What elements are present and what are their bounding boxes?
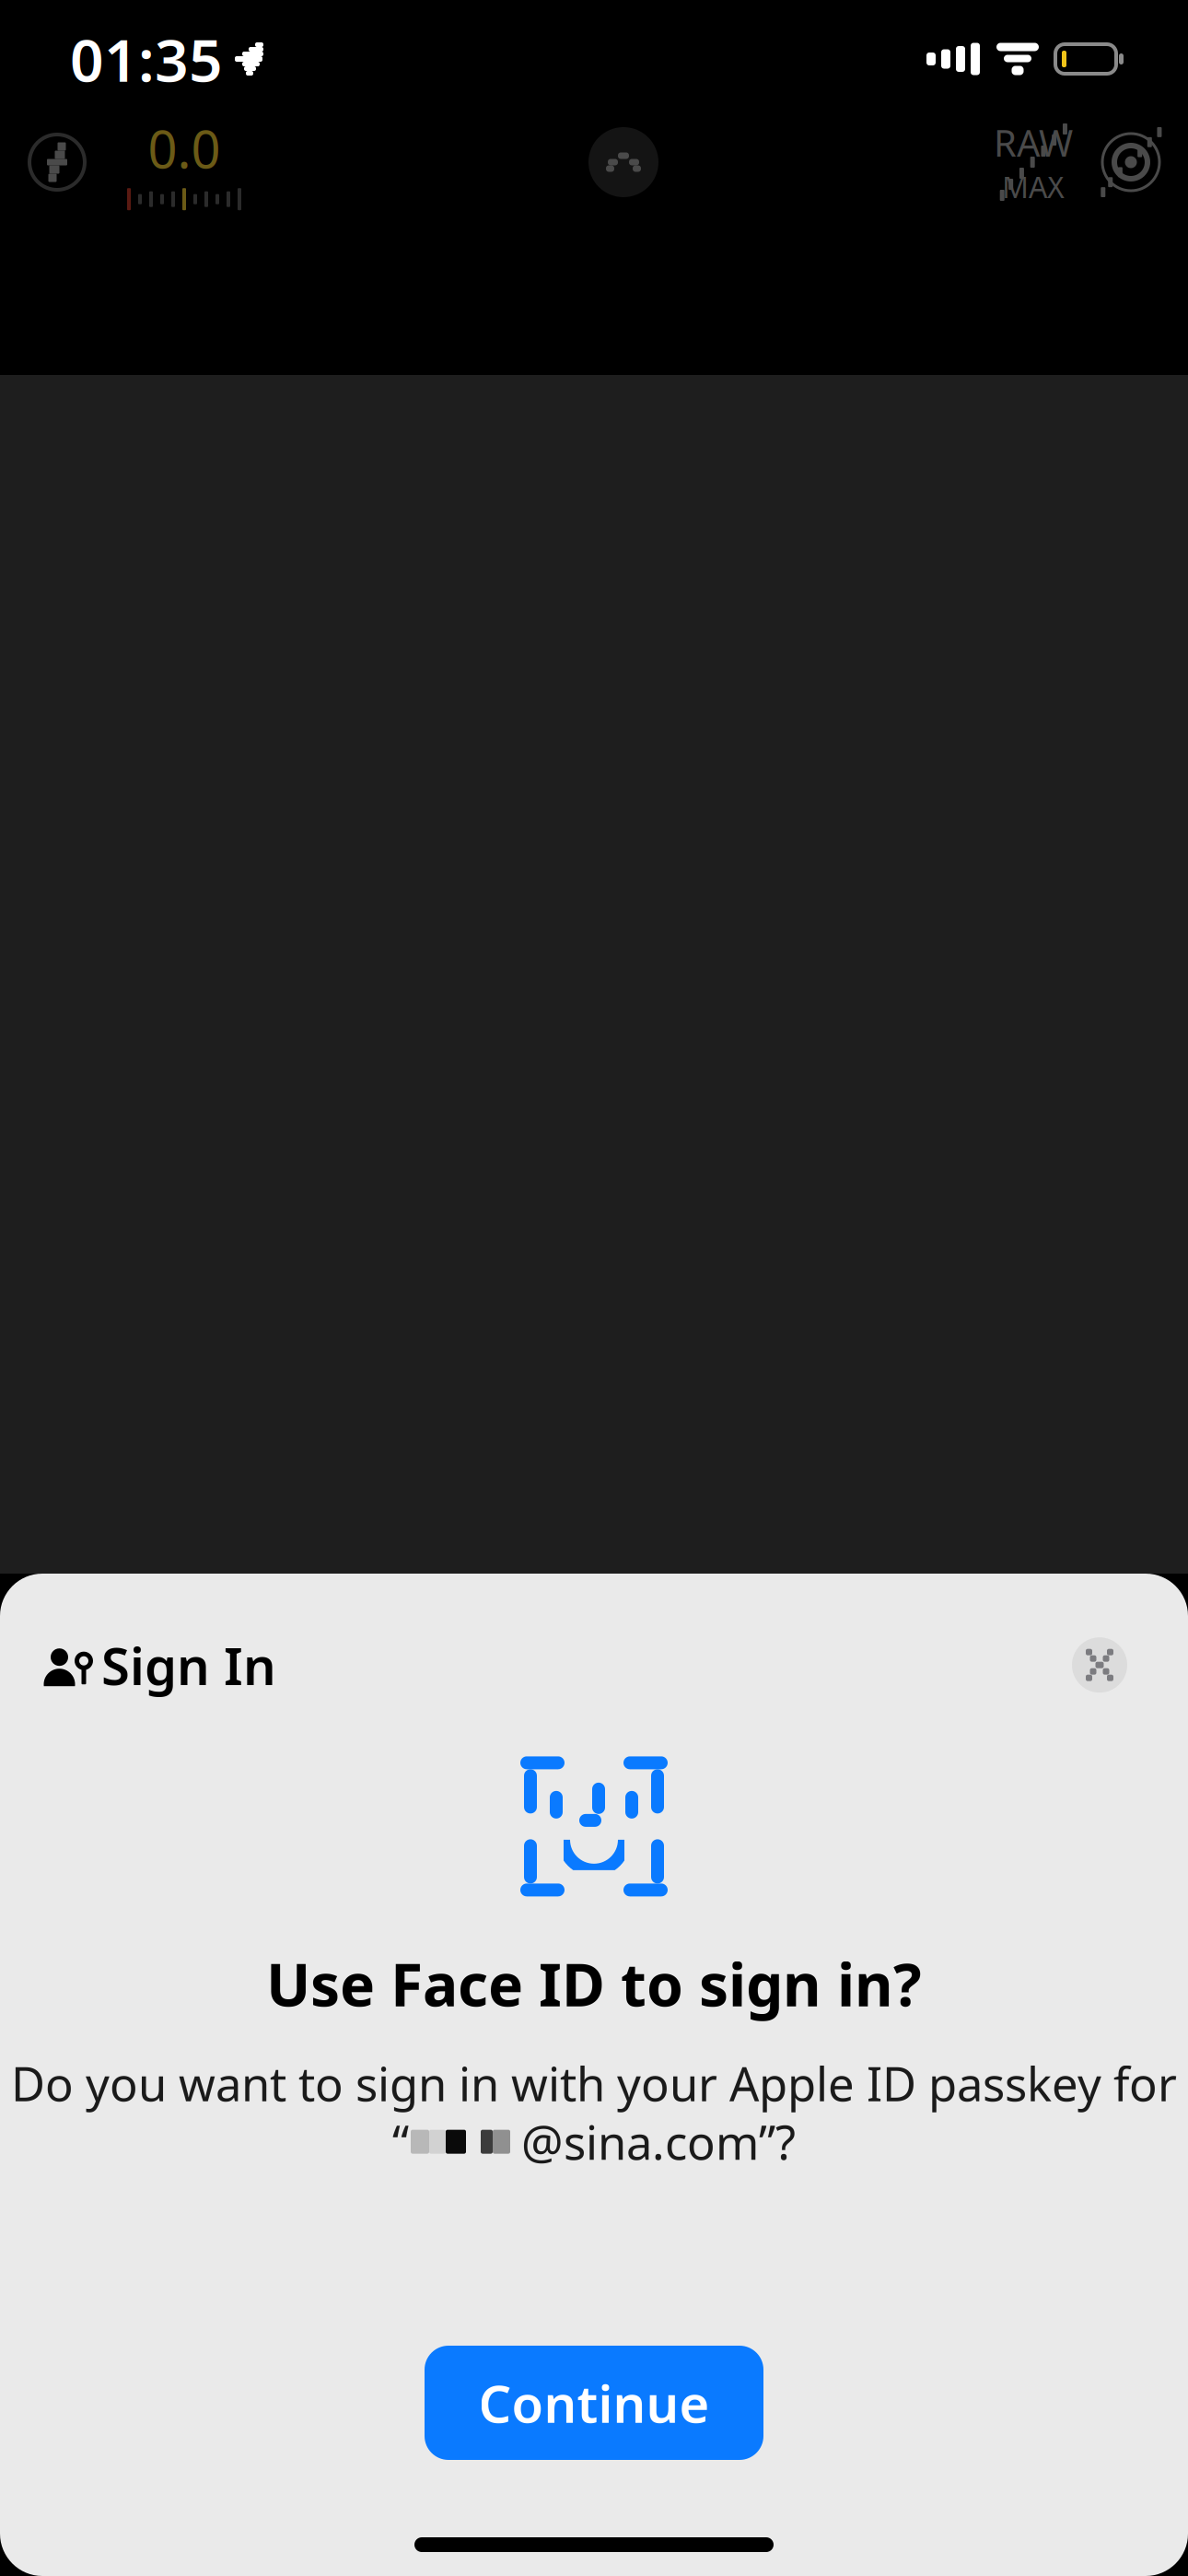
staticText: Sign In (101, 1631, 276, 1699)
staticText: RAW (994, 118, 1073, 167)
button[interactable]: Flash (22, 123, 92, 201)
button[interactable]: Close (1072, 1637, 1127, 1693)
staticText: MAX (1002, 167, 1065, 206)
staticText: 01:35 (70, 20, 223, 98)
staticText: 0.0 (148, 114, 221, 183)
button[interactable]: Continue (425, 2346, 763, 2460)
button[interactable]: RAW Max off (989, 123, 1077, 201)
staticText: Do you want to sign in with your Apple I… (11, 2052, 1177, 2114)
button[interactable]: Live Photo off (1094, 123, 1168, 201)
staticText: “ (392, 2111, 409, 2173)
staticText: @sina.com”? (521, 2111, 796, 2173)
staticText: Continue (478, 2369, 710, 2437)
button[interactable]: More camera options (588, 123, 658, 201)
staticText: Use Face ID to sign in? (266, 1944, 922, 2023)
